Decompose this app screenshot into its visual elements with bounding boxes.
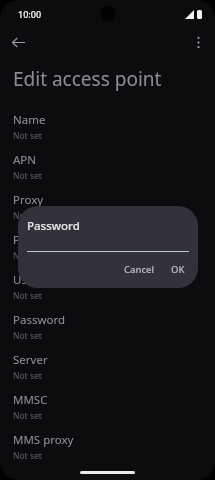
staticText: MMSC [13,392,48,408]
staticText: Not set [13,170,42,182]
staticText: Not set [13,330,42,342]
button[interactable]: OK [167,261,189,278]
button[interactable]: More options [184,28,212,56]
staticText: Password [13,312,66,328]
staticText: MMS proxy [13,432,74,448]
staticText: Cancel [124,263,155,276]
button[interactable]: MMS proxy [0,429,215,469]
staticText: OK [171,263,185,276]
staticText: Username [13,272,69,288]
staticText: Not set [13,250,42,262]
staticText: Not set [13,130,42,142]
staticText: Server [13,352,48,368]
button[interactable]: Back [4,28,32,56]
staticText: Password [27,218,80,234]
button[interactable]: MMSC [0,389,215,429]
staticText: Not set [13,450,42,462]
staticText: Edit access point [13,66,162,92]
button[interactable]: Port [0,229,215,269]
button[interactable]: Password [0,309,215,349]
staticText: Not set [13,410,42,422]
button[interactable]: Server [0,349,215,389]
button[interactable]: Username [0,269,215,309]
button[interactable]: Name [0,109,215,149]
button[interactable]: APN [0,149,215,189]
staticText: Not set [13,290,42,302]
staticText: Not set [13,370,42,382]
staticText: 10:00 [18,8,42,20]
staticText: Name [13,112,46,128]
staticText: APN [13,152,37,168]
button[interactable]: Cancel [120,261,159,278]
staticText: Port [13,232,36,248]
staticText: Proxy [13,192,44,208]
button[interactable]: Proxy [0,189,215,229]
staticText: Not set [13,210,42,222]
